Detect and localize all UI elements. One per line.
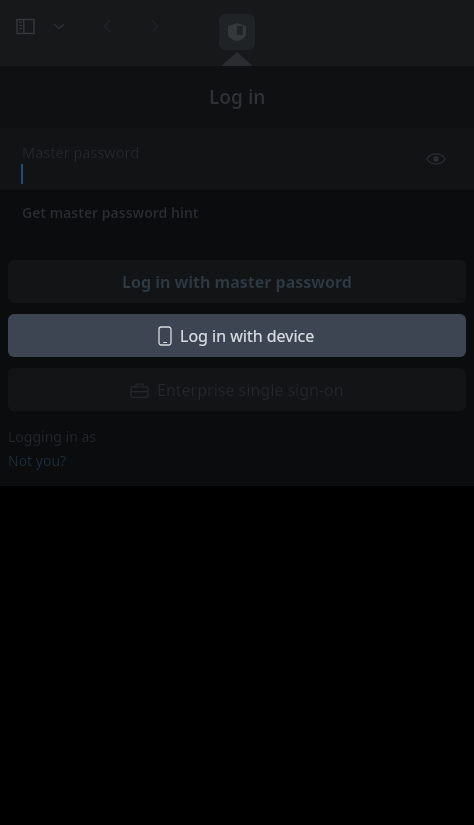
staticText: Not you? xyxy=(8,451,67,470)
button[interactable]: Enterprise single sign-on xyxy=(8,368,466,411)
staticText: Enterprise single sign-on xyxy=(157,379,344,401)
staticText: Master password xyxy=(22,142,140,162)
staticText: Logging in as xyxy=(8,427,97,446)
button[interactable]: Log in with device xyxy=(8,314,466,357)
button[interactable]: Bitwarden extension xyxy=(219,14,255,50)
button[interactable]: Toggle visibility xyxy=(422,145,450,173)
button[interactable]: Log in with master password xyxy=(8,260,466,303)
staticText: Log in with master password xyxy=(122,271,352,293)
staticText: Log in xyxy=(209,84,266,110)
button[interactable]: Not you? xyxy=(8,451,67,470)
staticText: Log in with device xyxy=(180,325,315,347)
button[interactable]: Toggle sidebar xyxy=(10,11,40,41)
button[interactable]: Get master password hint xyxy=(0,190,474,234)
button[interactable]: Master password xyxy=(0,128,474,190)
button[interactable]: Show tabs xyxy=(46,13,72,39)
staticText: Get master password hint xyxy=(22,203,199,222)
